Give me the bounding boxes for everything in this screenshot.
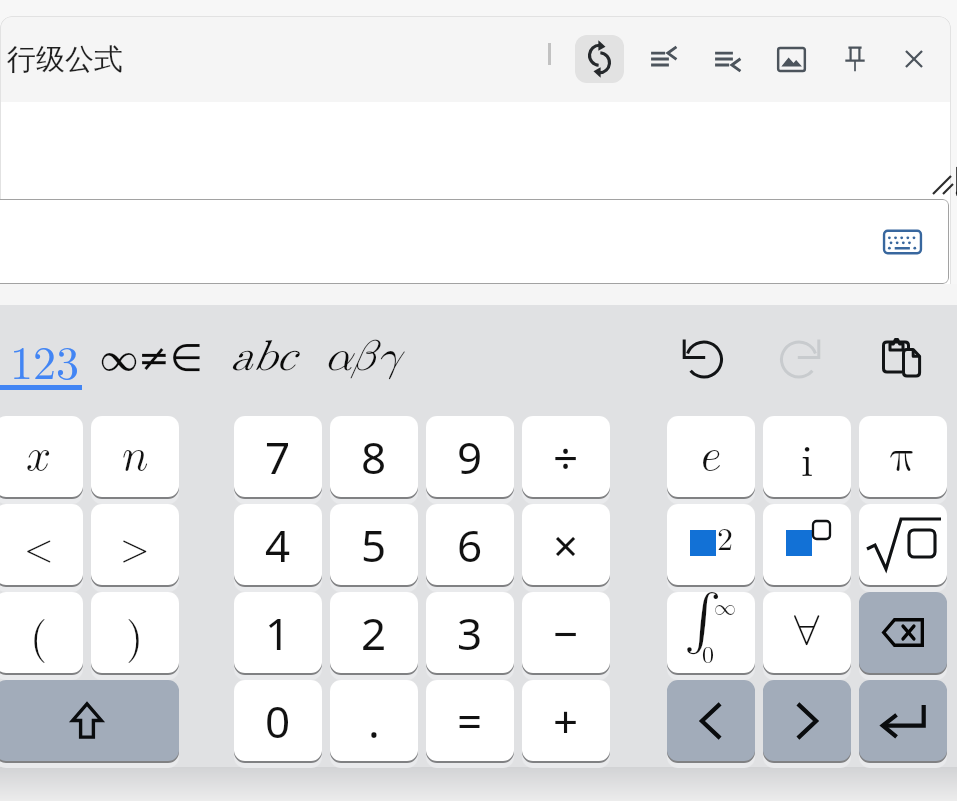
- button[interactable]: ÷: [522, 416, 610, 505]
- button[interactable]: 2: [667, 504, 755, 593]
- staticText: αβγ: [323, 335, 400, 378]
- staticText: abc: [230, 335, 295, 378]
- button[interactable]: [763, 680, 851, 769]
- button[interactable]: ∞≠∈: [89, 310, 214, 400]
- staticText: (: [30, 602, 48, 664]
- staticText: 𝑥: [26, 435, 52, 479]
- button[interactable]: 8: [330, 416, 418, 505]
- button[interactable]: Redo: [763, 320, 839, 396]
- staticText: 𝑒: [701, 435, 722, 479]
- staticText: ∞: [714, 597, 737, 619]
- staticText: .: [368, 691, 380, 751]
- staticText: π: [890, 435, 916, 479]
- button[interactable]: Outdent: [635, 31, 691, 87]
- button[interactable]: 6: [426, 504, 514, 593]
- staticText: 123: [10, 327, 79, 392]
- button[interactable]: 0: [234, 680, 322, 769]
- staticText: ∞≠∈: [100, 328, 203, 382]
- staticText: 行级公式: [7, 41, 123, 78]
- button[interactable]: Refresh: [575, 35, 624, 83]
- button[interactable]: +: [522, 680, 610, 769]
- staticText: i: [801, 426, 814, 488]
- button[interactable]: (: [0, 592, 83, 681]
- button[interactable]: Undo: [664, 320, 740, 396]
- button[interactable]: 𝑒: [667, 416, 755, 505]
- button[interactable]: 9: [426, 416, 514, 505]
- staticText: 1: [265, 603, 291, 663]
- staticText: ): [126, 602, 144, 664]
- staticText: 5: [361, 515, 387, 575]
- button[interactable]: 1: [234, 592, 322, 681]
- staticText: +: [553, 691, 579, 751]
- staticText: −: [553, 603, 579, 663]
- button[interactable]: 5: [330, 504, 418, 593]
- staticText: 9: [457, 427, 483, 487]
- button[interactable]: <: [0, 504, 83, 593]
- button[interactable]: >: [91, 504, 179, 593]
- button[interactable]: [763, 504, 851, 593]
- button[interactable]: 4: [234, 504, 322, 593]
- staticText: 2: [717, 514, 734, 559]
- button[interactable]: 𝑛: [91, 416, 179, 505]
- staticText: 4: [265, 515, 291, 575]
- button[interactable]: =: [426, 680, 514, 769]
- staticText: 印: [953, 156, 957, 211]
- staticText: ∫: [684, 592, 722, 648]
- button[interactable]: ∫: [667, 592, 755, 681]
- button[interactable]: 7: [234, 416, 322, 505]
- button[interactable]: Pin: [827, 31, 883, 87]
- button[interactable]: [667, 680, 755, 769]
- button[interactable]: ∀: [763, 592, 851, 681]
- button[interactable]: 𝑥: [0, 416, 83, 505]
- staticText: >: [120, 518, 150, 572]
- button[interactable]: Indent: [699, 31, 755, 87]
- staticText: 0: [265, 691, 291, 751]
- staticText: <: [24, 518, 54, 572]
- button[interactable]: i: [763, 416, 851, 505]
- staticText: 2: [361, 603, 387, 663]
- button[interactable]: Show keyboard: [877, 222, 927, 262]
- staticText: ×: [553, 515, 579, 575]
- staticText: 0: [702, 636, 714, 670]
- staticText: 𝑛: [122, 435, 149, 479]
- button[interactable]: [859, 680, 947, 769]
- button[interactable]: [859, 504, 947, 593]
- staticText: ∀: [792, 611, 822, 655]
- button[interactable]: Insert image: [763, 31, 819, 87]
- button[interactable]: Close: [886, 31, 942, 87]
- button[interactable]: .: [330, 680, 418, 769]
- staticText: 3: [457, 603, 483, 663]
- button[interactable]: abc: [221, 311, 304, 401]
- button[interactable]: Paste: [863, 320, 939, 396]
- staticText: ÷: [553, 427, 579, 487]
- button[interactable]: ): [91, 592, 179, 681]
- button[interactable]: π: [859, 416, 947, 505]
- button[interactable]: ×: [522, 504, 610, 593]
- staticText: 6: [457, 515, 483, 575]
- button[interactable]: 3: [426, 592, 514, 681]
- button[interactable]: [0, 680, 179, 769]
- button[interactable]: 2: [330, 592, 418, 681]
- button[interactable]: 123: [0, 306, 82, 396]
- button[interactable]: [859, 592, 947, 681]
- staticText: =: [457, 691, 483, 751]
- staticText: 7: [265, 427, 291, 487]
- button[interactable]: −: [522, 592, 610, 681]
- staticText: 8: [361, 427, 387, 487]
- button[interactable]: αβγ: [311, 311, 412, 401]
